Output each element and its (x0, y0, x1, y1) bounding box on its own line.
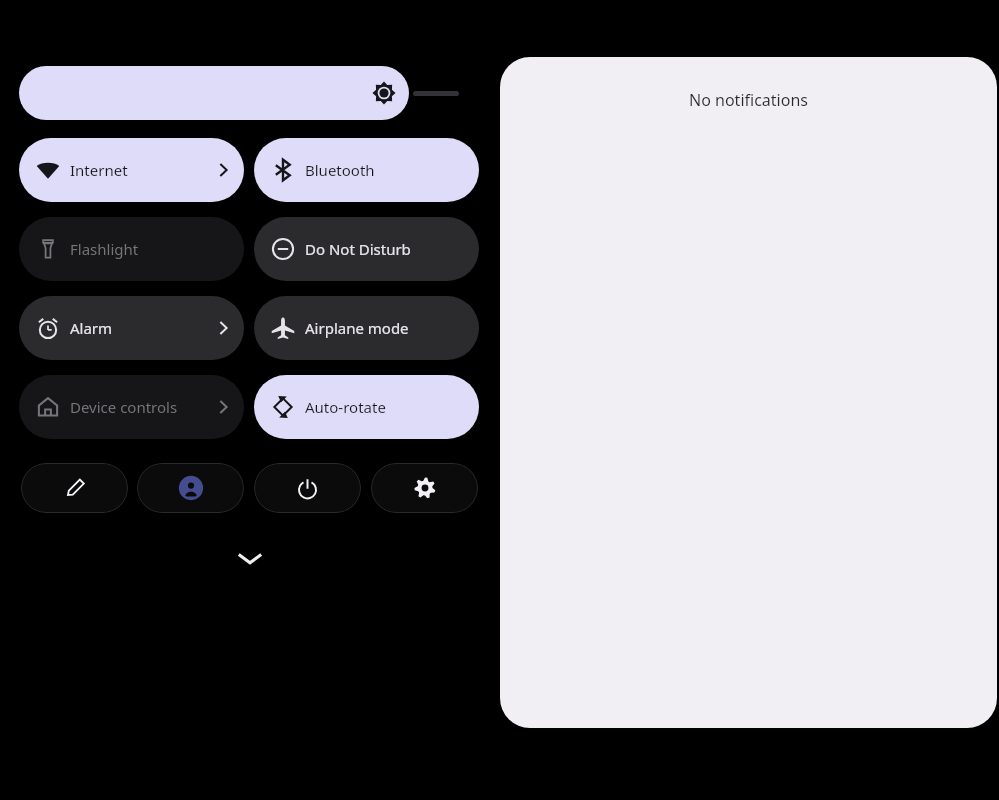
staticText: Device controls (70, 397, 178, 417)
button[interactable]: Do Not Disturb (254, 217, 479, 281)
button[interactable]: Bluetooth (254, 138, 479, 202)
staticText: Do Not Disturb (305, 239, 411, 259)
staticText: Flashlight (70, 239, 139, 259)
button[interactable]: Flashlight (19, 217, 244, 281)
button[interactable]: Power (254, 463, 361, 513)
staticText: Airplane mode (305, 318, 409, 338)
staticText: No notifications (689, 89, 808, 111)
button[interactable]: Alarm (19, 296, 244, 360)
button[interactable]: Edit tiles (21, 463, 128, 513)
staticText: Auto-rotate (305, 397, 386, 417)
button[interactable]: Settings (371, 463, 478, 513)
staticText: Internet (70, 160, 128, 180)
button[interactable]: Auto-rotate (254, 375, 479, 439)
button[interactable]: No notifications (500, 57, 997, 728)
button[interactable]: Internet (19, 138, 244, 202)
button[interactable]: Expand (225, 540, 275, 576)
staticText: Alarm (70, 318, 113, 338)
button[interactable]: User (137, 463, 244, 513)
button[interactable]: Airplane mode (254, 296, 479, 360)
staticText: Bluetooth (305, 160, 375, 180)
button[interactable]: Device controls (19, 375, 244, 439)
button[interactable]: Brightness (19, 66, 409, 120)
